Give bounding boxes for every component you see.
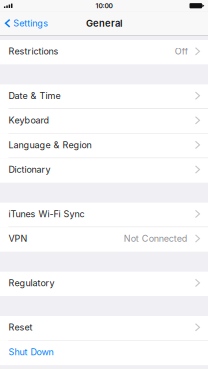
staticText: Settings xyxy=(13,18,48,29)
button[interactable]: Reset xyxy=(0,316,208,341)
staticText: 10:00 xyxy=(95,2,112,10)
staticText: Dictionary xyxy=(9,164,51,175)
button[interactable]: Keyboard xyxy=(0,109,208,134)
staticText: Date & Time xyxy=(9,90,61,101)
staticText: Keyboard xyxy=(9,115,50,126)
staticText: Regulatory xyxy=(9,277,55,288)
staticText: Off xyxy=(175,46,188,57)
button[interactable]: Shut Down xyxy=(0,341,208,365)
button[interactable]: Restrictions xyxy=(0,40,208,65)
staticText: General xyxy=(86,18,122,29)
button[interactable]: Date & Time xyxy=(0,84,208,109)
staticText: Not Connected xyxy=(124,233,188,244)
staticText: VPN xyxy=(9,233,28,244)
button[interactable]: Dictionary xyxy=(0,158,208,183)
button[interactable]: Settings xyxy=(0,15,48,32)
staticText: Shut Down xyxy=(9,346,54,357)
button[interactable]: Language & Region xyxy=(0,134,208,158)
button[interactable]: Regulatory xyxy=(0,272,208,296)
staticText: iTunes Wi-Fi Sync xyxy=(9,208,85,219)
staticText: Restrictions xyxy=(9,46,59,57)
staticText: Language & Region xyxy=(9,139,92,150)
button[interactable]: iTunes Wi-Fi Sync xyxy=(0,203,208,227)
button[interactable]: VPN xyxy=(0,227,208,252)
staticText: Reset xyxy=(9,322,33,333)
